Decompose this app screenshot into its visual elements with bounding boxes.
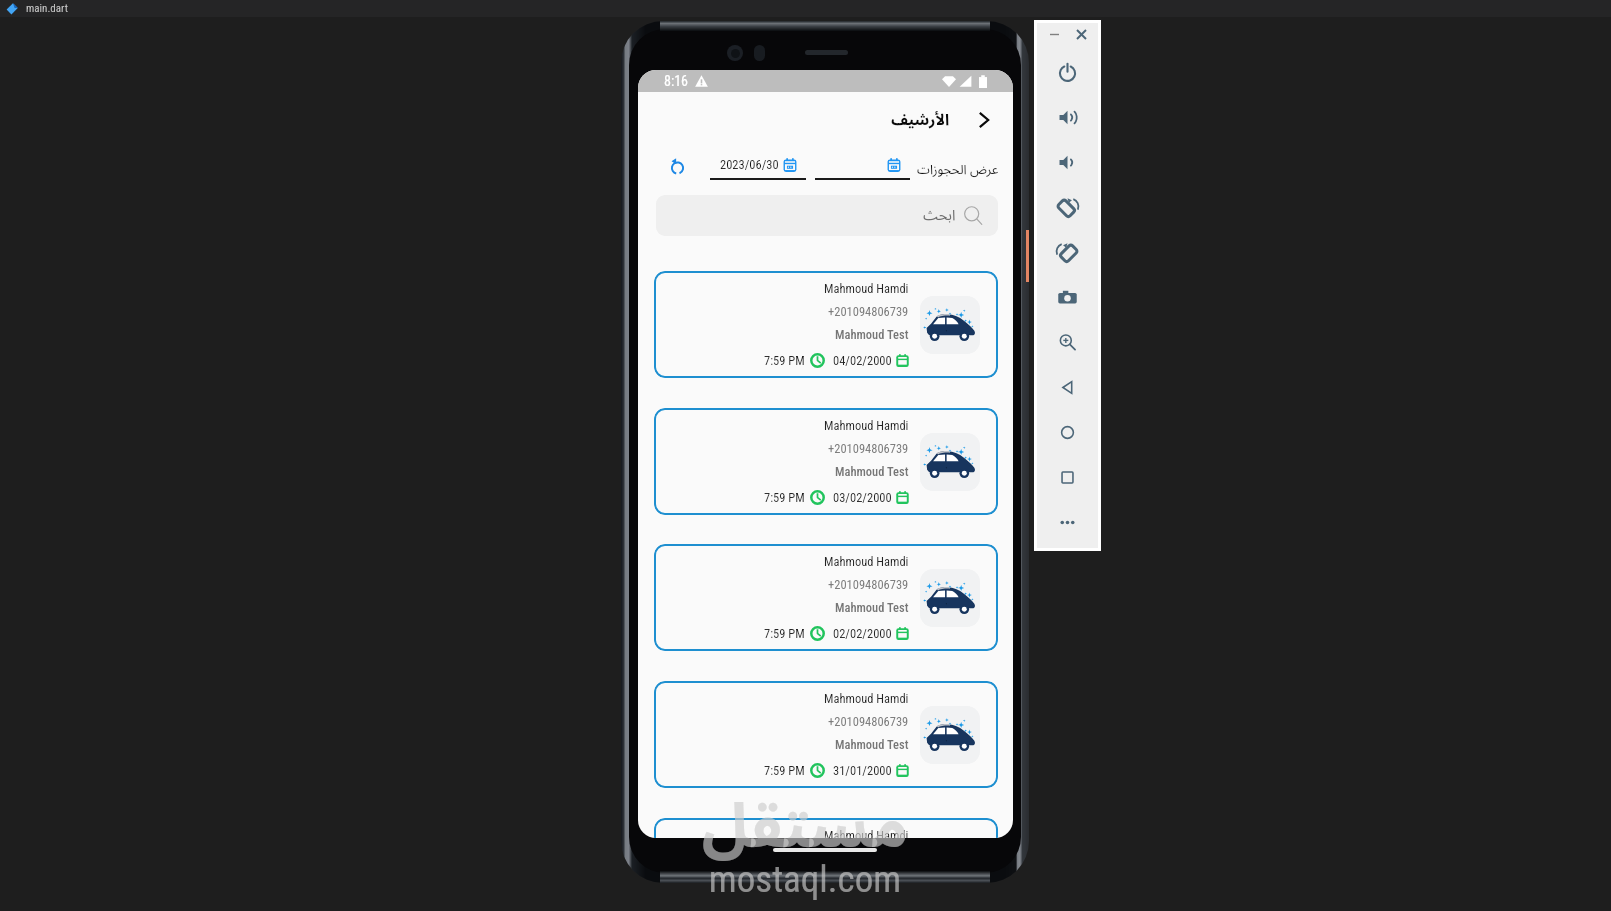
button[interactable]: Close <box>1070 23 1092 45</box>
button[interactable]: Back <box>968 105 998 135</box>
button[interactable]: Back <box>1037 365 1098 410</box>
button[interactable]: Mahmoud Hamdi <box>654 271 998 378</box>
staticText: mostaql.com <box>688 858 922 901</box>
staticText: Mahmoud Hamdi <box>824 828 909 838</box>
button[interactable]: Refresh <box>663 152 691 180</box>
button[interactable]: 2023/06/30 <box>710 152 806 180</box>
staticText: +201094806739 <box>828 714 909 729</box>
staticText: Mahmoud Test <box>835 327 909 342</box>
staticText: Mahmoud Hamdi <box>824 418 909 433</box>
staticText: Mahmoud Hamdi <box>824 281 909 296</box>
button[interactable]: Zoom <box>1037 320 1098 365</box>
button[interactable]: Power <box>1037 50 1098 95</box>
staticText: Mahmoud Hamdi <box>824 554 909 569</box>
staticText: +201094806739 <box>828 441 909 456</box>
staticText: +201094806739 <box>828 304 909 319</box>
staticText: Mahmoud Test <box>835 600 909 615</box>
staticText: +201094806739 <box>828 577 909 592</box>
button[interactable]: Recent apps <box>1037 455 1098 500</box>
button[interactable]: Home <box>1037 410 1098 455</box>
button[interactable]: Minimize <box>1043 23 1065 45</box>
button[interactable]: Screenshot <box>1037 275 1098 320</box>
staticText: 8:16 <box>664 73 689 89</box>
staticText: main.dart <box>26 2 68 15</box>
staticText: مستقل <box>690 762 920 893</box>
staticText: ابحث <box>923 200 956 231</box>
staticText: الأرشيف <box>891 104 950 137</box>
button[interactable]: More <box>1037 500 1098 545</box>
button[interactable]: ابحث <box>656 195 998 236</box>
staticText: 02/02/2000 <box>833 626 892 641</box>
button[interactable] <box>815 152 910 180</box>
button[interactable]: Mahmoud Hamdi <box>654 544 998 651</box>
staticText: 04/02/2000 <box>833 353 892 368</box>
staticText: 7:59 PM <box>764 490 805 505</box>
staticText: Mahmoud Test <box>835 737 909 752</box>
staticText: Mahmoud Test <box>835 464 909 479</box>
staticText: 7:59 PM <box>764 763 805 778</box>
button[interactable]: Rotate right <box>1037 230 1098 275</box>
staticText: 7:59 PM <box>764 626 805 641</box>
staticText: عرض الحجوزات <box>917 156 999 183</box>
staticText: Mahmoud Hamdi <box>824 691 909 706</box>
staticText: 7:59 PM <box>764 353 805 368</box>
button[interactable]: Mahmoud Hamdi <box>654 681 998 788</box>
button[interactable]: Volume up <box>1037 95 1098 140</box>
button[interactable]: Mahmoud Hamdi <box>654 818 998 838</box>
staticText: 31/01/2000 <box>833 763 892 778</box>
button[interactable]: Volume down <box>1037 140 1098 185</box>
staticText: 2023/06/30 <box>720 157 779 172</box>
button[interactable]: Mahmoud Hamdi <box>654 408 998 515</box>
button[interactable]: Rotate left <box>1037 185 1098 230</box>
staticText: 03/02/2000 <box>833 490 892 505</box>
